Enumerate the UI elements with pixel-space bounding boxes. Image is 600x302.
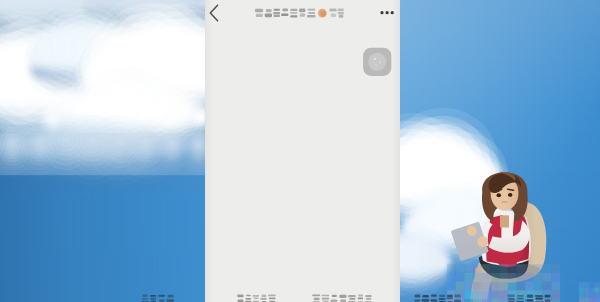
button[interactable]: 我们是快乐的一家人 [245,2,365,28]
button[interactable]: Back [203,2,231,28]
button[interactable]: More options [374,2,400,28]
button[interactable]: Quick action [363,46,393,76]
